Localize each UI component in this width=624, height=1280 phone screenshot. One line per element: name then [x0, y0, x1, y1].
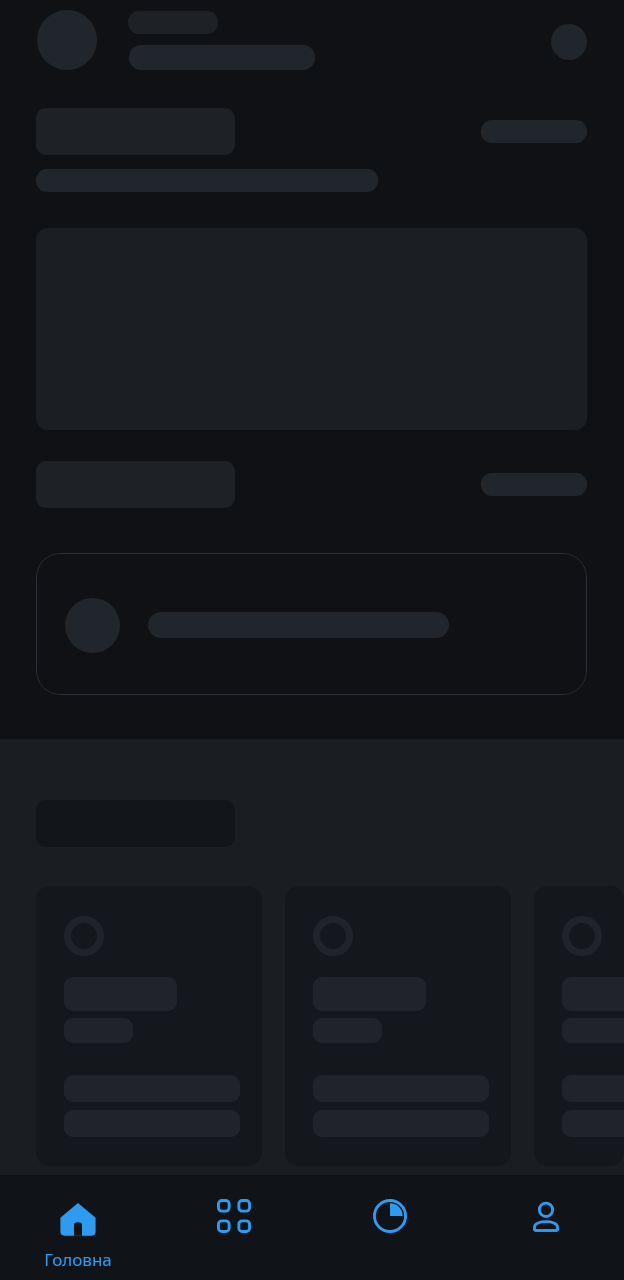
button[interactable] [36, 553, 587, 695]
button[interactable] [36, 886, 262, 1166]
button[interactable]: Головна [0, 1175, 156, 1280]
button[interactable] [285, 886, 511, 1166]
button[interactable] [534, 886, 624, 1166]
button[interactable]: Категорії [156, 1175, 312, 1280]
staticText: Головна [44, 1248, 112, 1271]
button[interactable]: Профіль [468, 1175, 624, 1280]
button[interactable]: Статистика [312, 1175, 468, 1280]
